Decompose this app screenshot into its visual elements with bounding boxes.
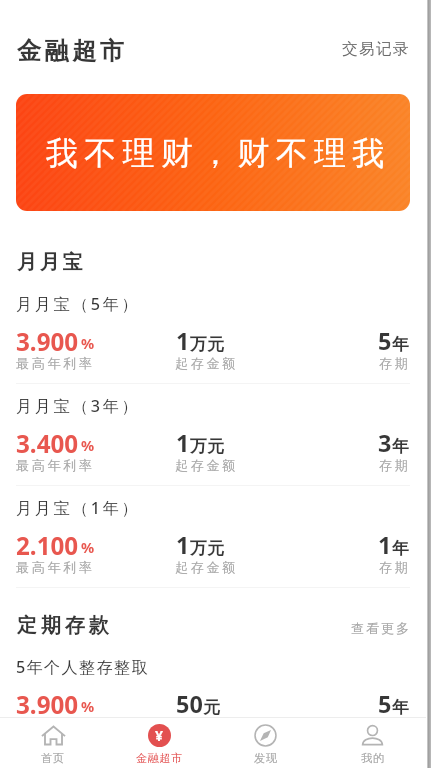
staticText: 最高年利率: [16, 457, 95, 474]
button[interactable]: 发现: [212, 718, 319, 768]
button[interactable]: 月月宝（1年）: [0, 497, 426, 587]
staticText: 3: [378, 427, 392, 459]
button[interactable]: 金融超市: [106, 718, 212, 768]
staticText: 最高年利率: [16, 355, 95, 372]
staticText: 我不理财，财不理我: [46, 133, 391, 173]
staticText: 万元: [190, 538, 224, 559]
staticText: 元: [203, 697, 220, 718]
staticText: 1: [176, 529, 190, 561]
staticText: %: [81, 333, 95, 353]
staticText: 3.900: [16, 688, 79, 721]
staticText: 月月宝（1年）: [16, 497, 140, 519]
staticText: 存期: [379, 355, 411, 372]
staticText: 年: [392, 538, 409, 559]
staticText: 交易记录: [342, 39, 410, 59]
staticText: 5: [378, 325, 392, 357]
button[interactable]: 首页: [0, 718, 106, 768]
staticText: %: [81, 537, 95, 557]
staticText: 定期存款: [17, 613, 113, 638]
other: 首页: [42, 724, 65, 747]
staticText: 1: [378, 529, 392, 561]
staticText: 2.100: [16, 529, 79, 562]
staticText: 3.900: [16, 325, 79, 358]
staticText: 月月宝（5年）: [16, 293, 140, 315]
staticText: 我的: [361, 751, 385, 765]
staticText: 月月宝（3年）: [16, 395, 140, 417]
other: 金融超市: [148, 724, 171, 747]
staticText: 3.400: [16, 427, 79, 460]
staticText: 月月宝: [17, 250, 86, 275]
other: 我的: [361, 724, 384, 747]
staticText: 年: [392, 697, 409, 718]
staticText: 金融超市: [17, 36, 128, 66]
other: 发现: [254, 724, 277, 747]
staticText: 起存金额: [175, 559, 238, 576]
staticText: 金融超市: [136, 751, 183, 765]
button[interactable]: 我的: [319, 718, 426, 768]
button[interactable]: 交易记录: [336, 33, 416, 65]
staticText: %: [81, 696, 95, 716]
staticText: 年: [392, 334, 409, 355]
button[interactable]: 5年个人整存整取: [0, 656, 426, 746]
staticText: 起存金额: [175, 457, 238, 474]
staticText: 1: [176, 427, 190, 459]
staticText: 最高年利率: [16, 559, 95, 576]
staticText: 年: [392, 436, 409, 457]
staticText: 5: [378, 688, 392, 720]
staticText: 首页: [41, 751, 65, 765]
staticText: ¥: [155, 726, 164, 745]
staticText: 最高年利率: [16, 718, 95, 735]
button[interactable]: 月月宝（3年）: [0, 395, 426, 485]
button[interactable]: 金融超市: [11, 30, 134, 72]
staticText: 万元: [190, 334, 224, 355]
staticText: 5年个人整存整取: [16, 656, 149, 678]
staticText: 万元: [190, 436, 224, 457]
staticText: 1: [176, 325, 190, 357]
staticText: 存期: [379, 457, 411, 474]
staticText: 50: [176, 688, 203, 720]
button[interactable]: 月月宝（5年）: [0, 293, 426, 383]
staticText: 存期: [379, 559, 411, 576]
staticText: 发现: [254, 751, 278, 765]
staticText: 查看更多: [351, 620, 411, 637]
button[interactable]: 我不理财，财不理我: [16, 94, 410, 211]
staticText: 起存金额: [175, 355, 238, 372]
staticText: %: [81, 435, 95, 455]
button[interactable]: 查看更多: [345, 614, 417, 643]
